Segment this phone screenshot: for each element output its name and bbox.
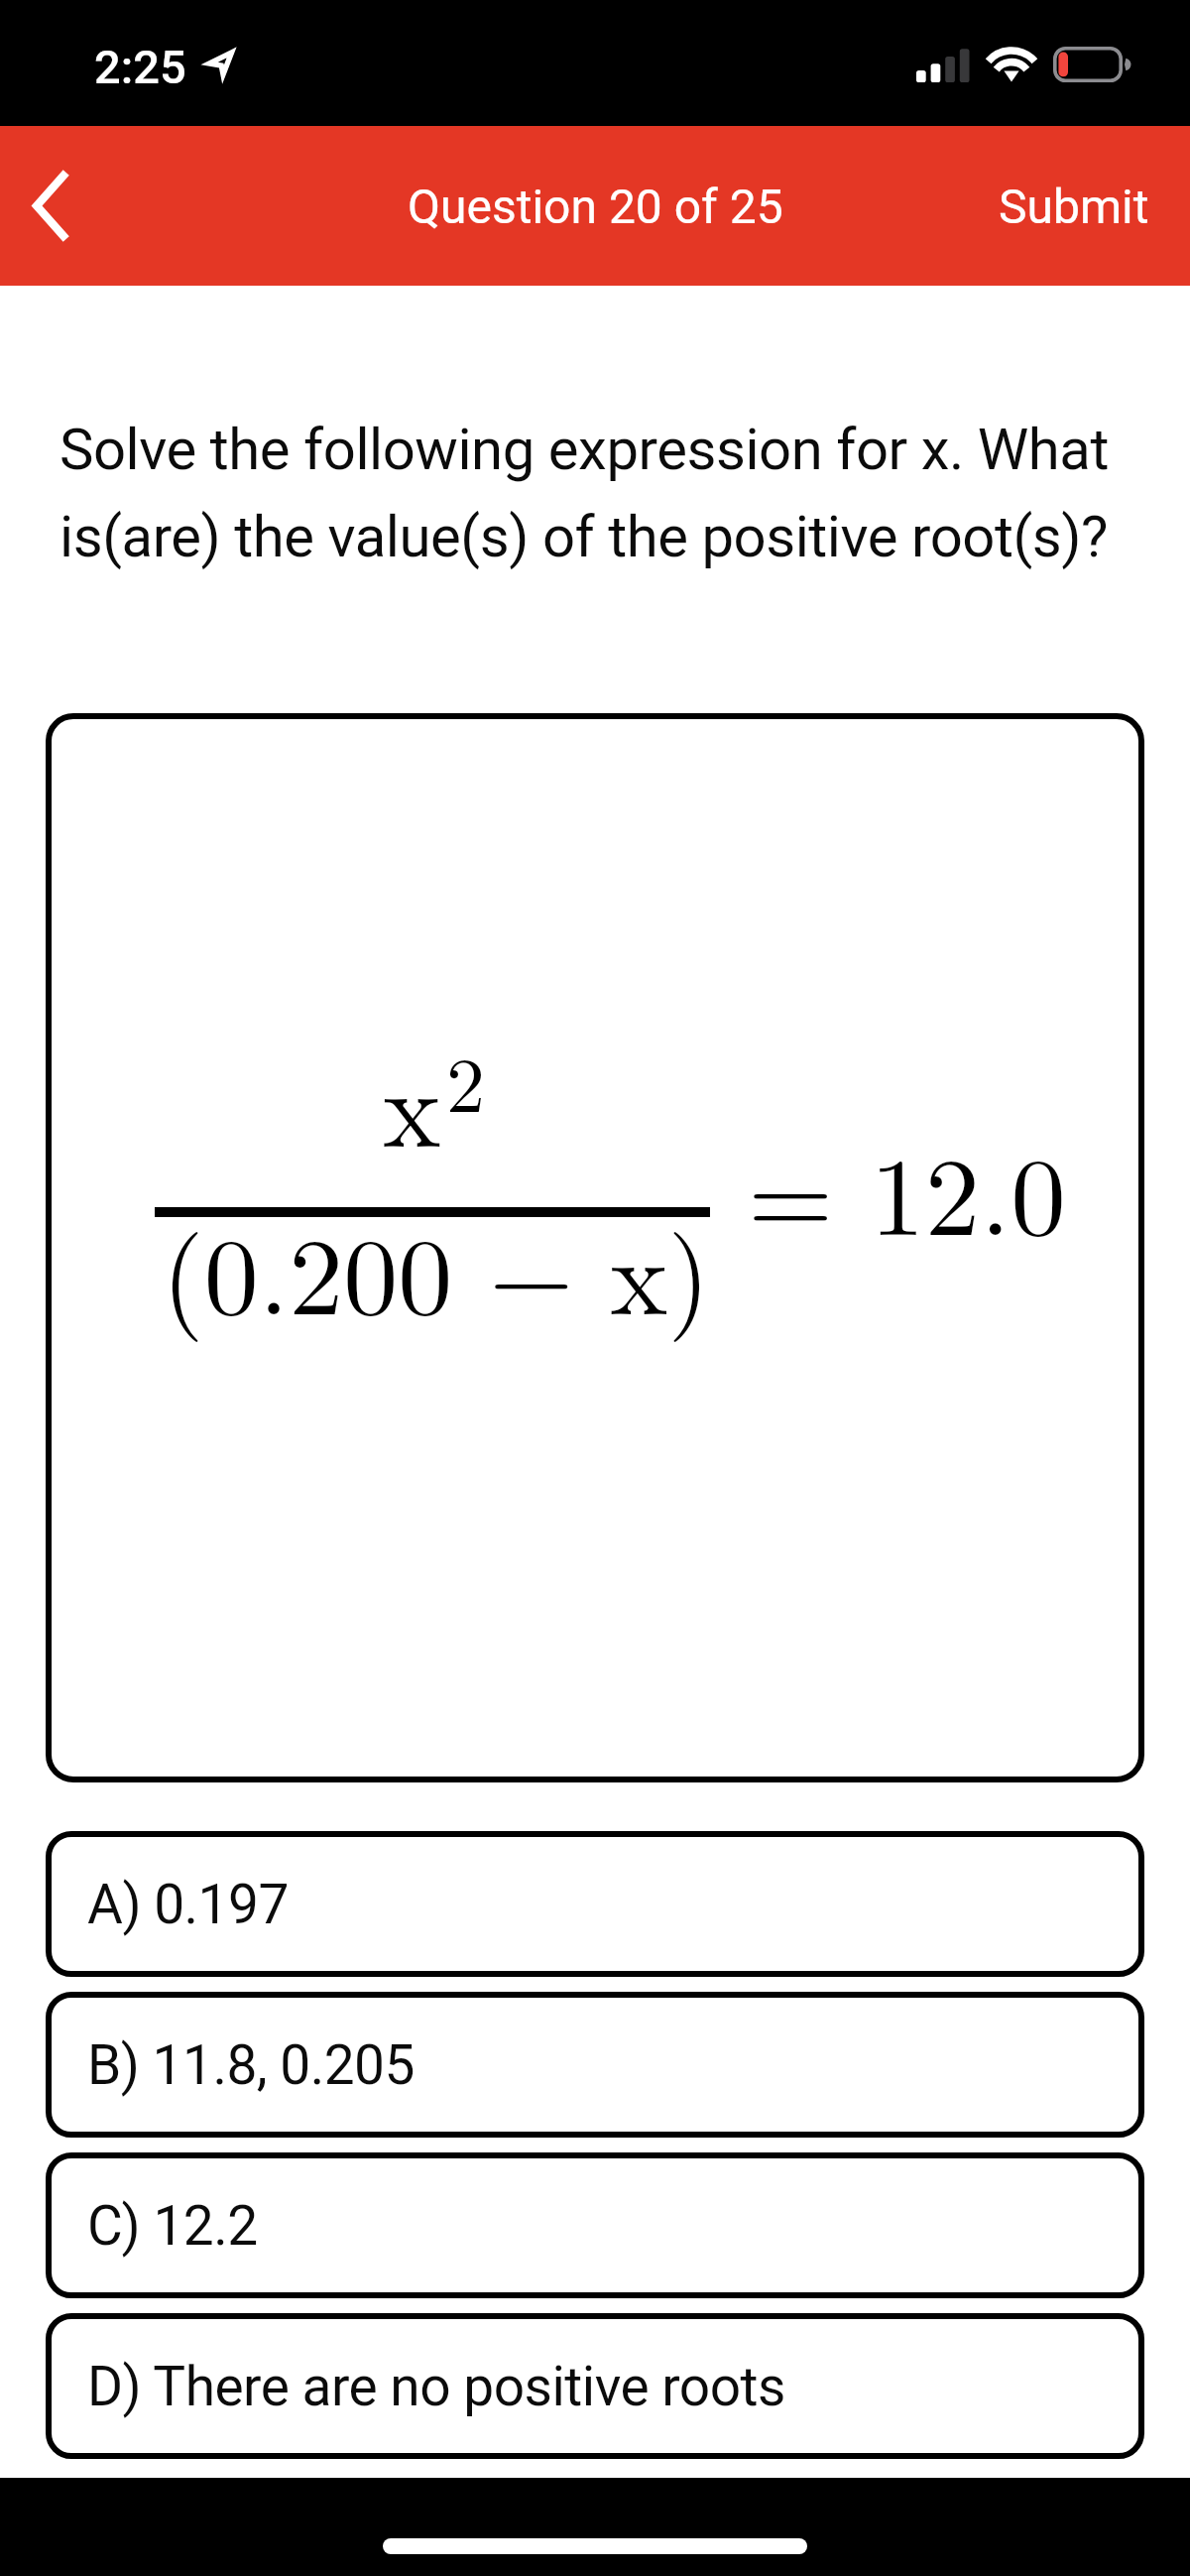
staticText: A) 0.197 <box>87 1873 289 1936</box>
button[interactable]: Back <box>0 126 109 286</box>
staticText: D) There are no positive roots <box>87 2355 785 2418</box>
staticText: (0.200 − x) <box>162 1191 711 1346</box>
button[interactable]: Submit <box>954 126 1190 286</box>
staticText: Solve the following expression for x. Wh… <box>59 416 1162 571</box>
staticText: Submit <box>999 179 1149 234</box>
staticText: C) 12.2 <box>87 2194 258 2258</box>
staticText: = 12.0 <box>748 1111 1066 1267</box>
button[interactable]: A) 0.197 <box>46 1831 1144 1977</box>
staticText: B) 11.8, 0.205 <box>87 2033 415 2097</box>
button[interactable]: B) 11.8, 0.205 <box>46 1992 1144 2138</box>
staticText: Question 20 of 25 <box>408 179 783 234</box>
staticText: 2 <box>446 1025 486 1135</box>
button[interactable]: D) There are no positive roots <box>46 2313 1144 2459</box>
staticText: 2:25 <box>94 40 186 94</box>
staticText: x <box>383 1023 441 1178</box>
button[interactable]: C) 12.2 <box>46 2152 1144 2298</box>
